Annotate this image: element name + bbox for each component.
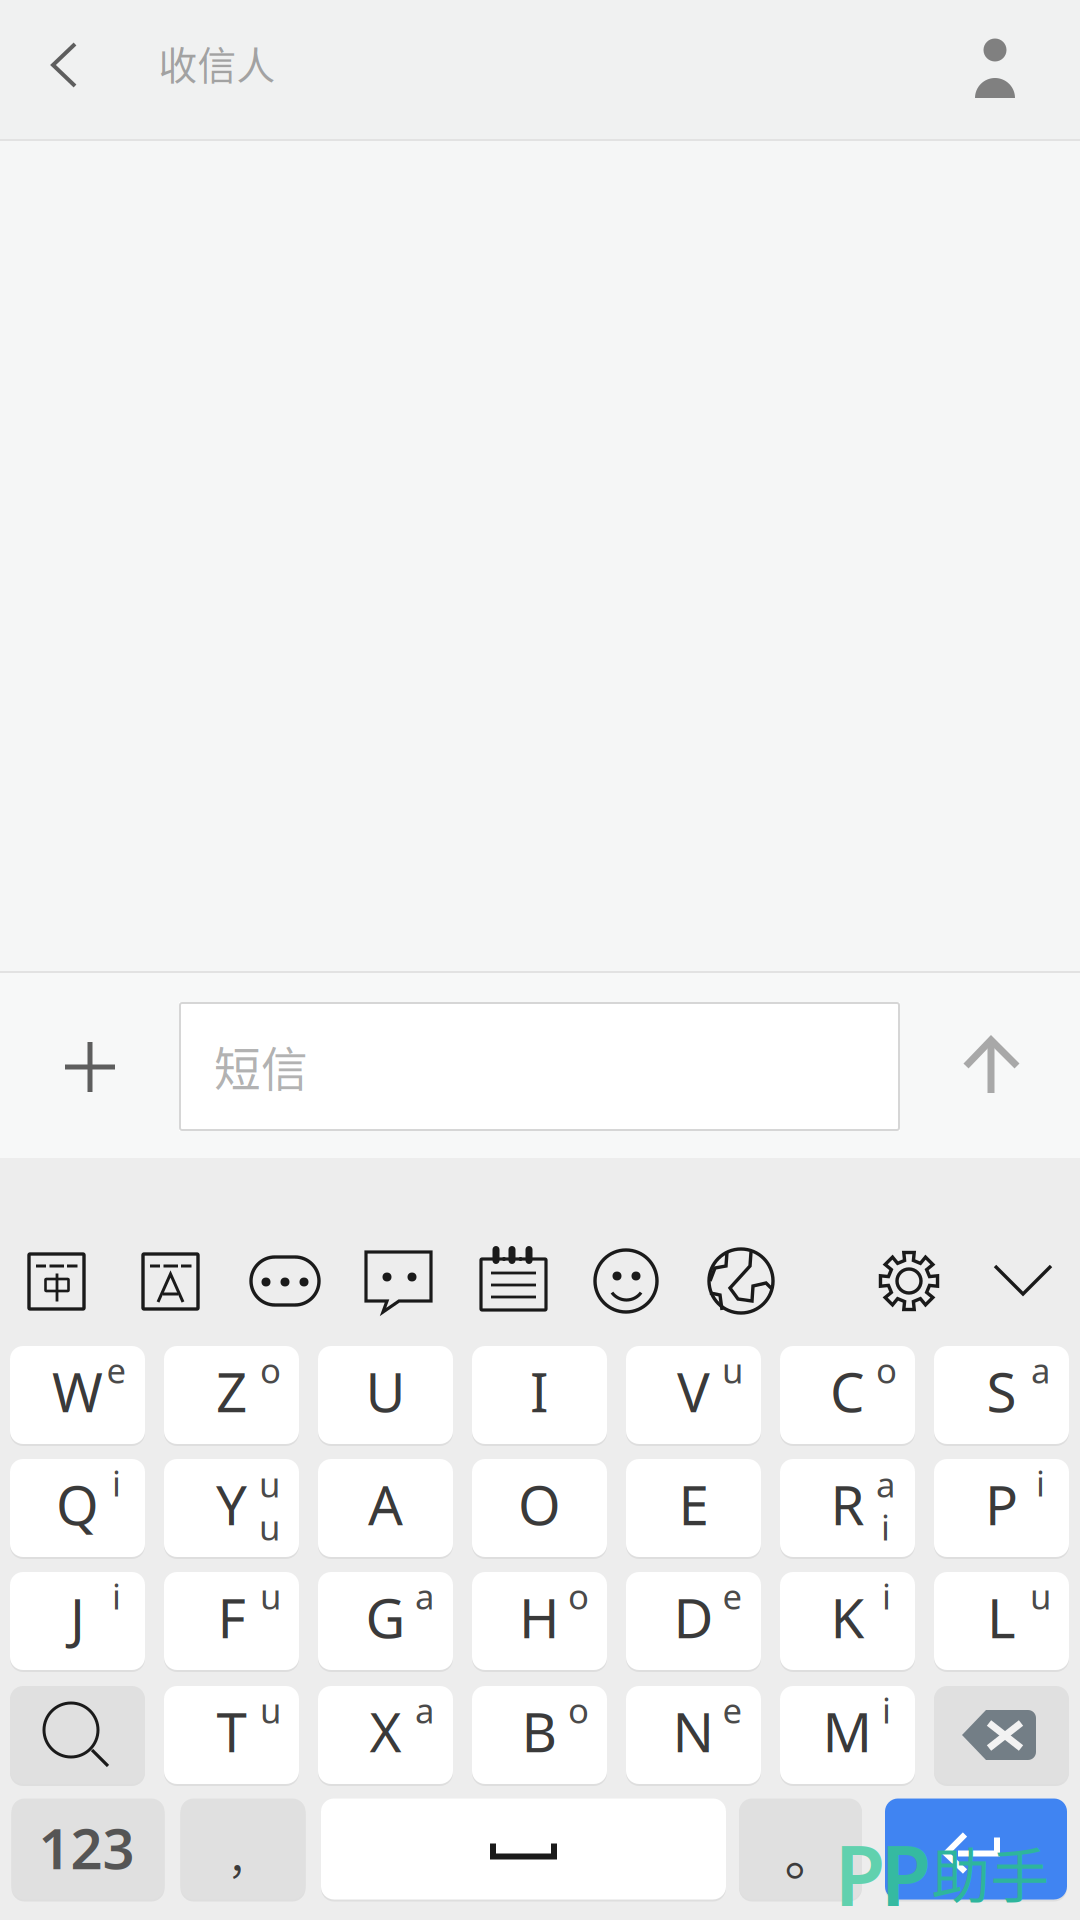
staticText: u <box>722 1346 743 1394</box>
button[interactable]: 短信 <box>179 1002 900 1131</box>
staticText: 短信 <box>214 1032 308 1100</box>
staticText: i <box>112 1572 121 1620</box>
button[interactable]: Space <box>321 1798 726 1899</box>
button[interactable]: Language <box>696 1236 786 1326</box>
staticText: K <box>830 1580 864 1654</box>
staticText: F <box>217 1580 245 1654</box>
staticText: a <box>1031 1346 1050 1394</box>
button[interactable]: Latin input <box>125 1236 215 1326</box>
staticText: e <box>106 1346 126 1394</box>
staticText: A <box>368 1467 403 1541</box>
staticText: O <box>518 1467 561 1541</box>
staticText: W <box>52 1354 103 1428</box>
staticText: N <box>672 1694 714 1768</box>
staticText: D <box>673 1580 713 1654</box>
button[interactable]: Return <box>885 1798 1067 1899</box>
staticText: u <box>259 1503 280 1551</box>
button[interactable]: 123 <box>11 1798 164 1899</box>
button[interactable]: Search <box>10 1686 145 1784</box>
staticText: Y <box>216 1467 247 1541</box>
staticText: a <box>876 1460 895 1508</box>
staticText: L <box>987 1580 1016 1654</box>
button[interactable]: Back <box>10 10 120 120</box>
staticText: U <box>365 1354 405 1428</box>
button[interactable]: Phrases <box>240 1236 330 1326</box>
staticText: E <box>678 1467 708 1541</box>
button[interactable]: Chinese input <box>11 1236 101 1326</box>
button[interactable]: Delete <box>934 1686 1069 1784</box>
staticText: i <box>882 1686 891 1734</box>
staticText: 。 <box>784 1814 837 1891</box>
staticText: i <box>112 1459 121 1507</box>
button[interactable]: 。 <box>739 1798 862 1899</box>
button[interactable]: Clipboard <box>469 1232 559 1332</box>
button[interactable]: Hide keyboard <box>978 1241 1068 1321</box>
staticText: a <box>415 1686 434 1734</box>
staticText: P <box>880 1818 931 1920</box>
staticText: P <box>834 1818 885 1920</box>
staticText: B <box>521 1694 557 1768</box>
staticText: o <box>568 1686 589 1734</box>
staticText: I <box>530 1354 549 1428</box>
staticText: i <box>1036 1459 1045 1507</box>
staticText: e <box>722 1686 742 1734</box>
staticText: G <box>365 1580 405 1654</box>
staticText: M <box>822 1694 872 1768</box>
staticText: 收信人 <box>158 35 275 91</box>
staticText: u <box>1030 1572 1051 1620</box>
staticText: X <box>369 1694 401 1768</box>
staticText: a <box>415 1572 434 1620</box>
staticText: ， <box>227 1827 267 1885</box>
staticText: Z <box>216 1354 247 1428</box>
button[interactable]: Keyboard settings <box>864 1236 954 1326</box>
staticText: 123 <box>38 1809 134 1886</box>
staticText: u <box>260 1572 281 1620</box>
staticText: V <box>677 1354 710 1428</box>
staticText: J <box>70 1580 85 1654</box>
staticText: u <box>260 1686 281 1734</box>
staticText: o <box>260 1346 281 1394</box>
staticText: o <box>876 1346 897 1394</box>
staticText: C <box>830 1354 865 1428</box>
button[interactable]: Send <box>936 1011 1046 1121</box>
button[interactable]: Add attachment <box>35 1012 145 1122</box>
staticText: o <box>568 1572 589 1620</box>
staticText: i <box>881 1503 890 1551</box>
staticText: 助 <box>931 1829 990 1914</box>
button[interactable]: Contacts <box>940 10 1050 120</box>
staticText: 手 <box>990 1829 1049 1914</box>
staticText: P <box>985 1467 1018 1541</box>
staticText: R <box>830 1467 864 1541</box>
staticText: H <box>519 1580 560 1654</box>
staticText: S <box>986 1354 1016 1428</box>
staticText: T <box>216 1694 246 1768</box>
staticText: e <box>722 1572 742 1620</box>
button[interactable]: ， <box>180 1798 305 1899</box>
staticText: u <box>259 1460 280 1508</box>
staticText: i <box>882 1572 891 1620</box>
button[interactable]: Emoji <box>581 1236 671 1326</box>
staticText: Q <box>56 1467 99 1541</box>
button[interactable]: Messages <box>354 1236 444 1326</box>
